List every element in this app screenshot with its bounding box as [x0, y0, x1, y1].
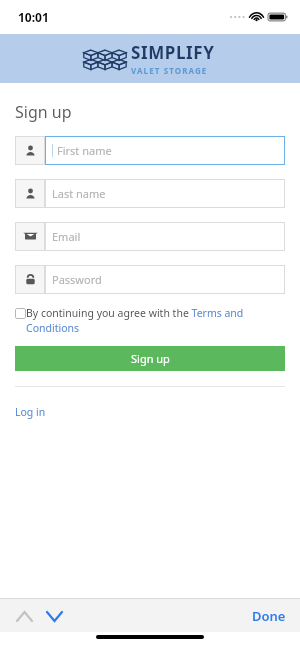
button[interactable]: Log in — [15, 405, 46, 419]
button[interactable]: Previous field — [12, 604, 36, 628]
other: Agree to Terms and Conditions — [15, 308, 26, 319]
staticText: 10:01 — [18, 9, 49, 25]
staticText: VALET STORAGE — [131, 65, 208, 76]
staticText: Log in — [15, 405, 46, 419]
button[interactable]: First name — [15, 136, 285, 165]
staticText: Password — [52, 272, 102, 287]
button[interactable]: Agree to Terms and Conditions — [15, 306, 282, 335]
button[interactable]: Next field — [42, 604, 66, 628]
staticText: SIMPLIFY — [131, 41, 215, 64]
staticText: Sign up — [131, 351, 170, 366]
button[interactable]: Done — [252, 607, 286, 625]
staticText: Done — [252, 607, 286, 625]
staticText: By continuing you agree with the Terms a… — [26, 306, 282, 335]
staticText: Last name — [52, 186, 106, 201]
button[interactable]: Password — [15, 265, 285, 294]
staticText: First name — [57, 143, 112, 158]
button[interactable]: Email — [15, 222, 285, 251]
button[interactable]: Sign up — [15, 346, 285, 371]
button[interactable]: Last name — [15, 179, 285, 208]
staticText: Sign up — [15, 101, 72, 123]
staticText: Email — [52, 229, 81, 244]
